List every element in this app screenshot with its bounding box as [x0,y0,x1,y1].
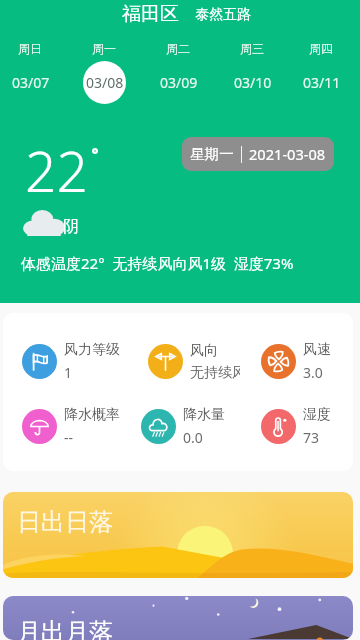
staticText: -- [64,428,74,447]
staticText: 03/08 [86,73,124,92]
button[interactable]: 湿度 [240,394,353,459]
staticText: 03/09 [160,73,198,92]
button[interactable]: 降水概率 [15,394,127,459]
staticText: 阴 [63,217,79,237]
button[interactable]: 周一 [67,41,141,104]
staticText: 降水量 [183,406,225,424]
staticText: 月出月落 [17,617,113,640]
staticText: 3.0 [303,363,323,382]
button[interactable]: 周日 [0,41,67,104]
button[interactable]: 福田区 [6,0,360,27]
button[interactable]: 风向 [127,329,240,394]
button[interactable]: 星期一 [182,137,334,171]
staticText: 周二 [166,41,190,56]
button[interactable]: 风速 [240,329,353,394]
staticText: 风速 [303,341,331,359]
button[interactable]: 周三 [215,41,289,104]
staticText: 1 [64,363,73,382]
staticText: 73 [303,428,320,447]
staticText: 福田区 [122,2,179,26]
button[interactable]: 日出日落 [3,492,353,578]
staticText: 03/10 [234,73,272,92]
button[interactable]: 月出月落 [3,596,353,640]
button[interactable]: 周四 [289,41,353,104]
staticText: 风力等级 [64,341,120,359]
staticText: 周四 [309,41,333,56]
staticText: 周三 [240,41,264,56]
button[interactable]: 风力等级 [15,329,127,394]
button[interactable]: 降水量 [127,394,240,459]
staticText: 降水概率 [64,406,120,424]
staticText: 星期一 [190,145,234,163]
staticText: 日出日落 [17,507,113,537]
staticText: 周一 [92,41,116,56]
button[interactable]: 周二 [141,41,215,104]
staticText: 2021-03-08 [249,144,326,164]
staticText: 03/07 [12,73,50,92]
staticText: 泰然五路 [195,6,251,24]
staticText: 22 [25,133,88,208]
staticText: 0.0 [183,428,203,447]
staticText: 风向 [190,342,218,360]
staticText: 03/11 [303,73,341,92]
staticText: 无持续风向 [190,364,240,382]
staticText: 湿度 [303,406,331,424]
staticText: 周日 [18,41,42,56]
staticText: 体感温度22° 无持续风向风1级 湿度73% [21,253,294,273]
